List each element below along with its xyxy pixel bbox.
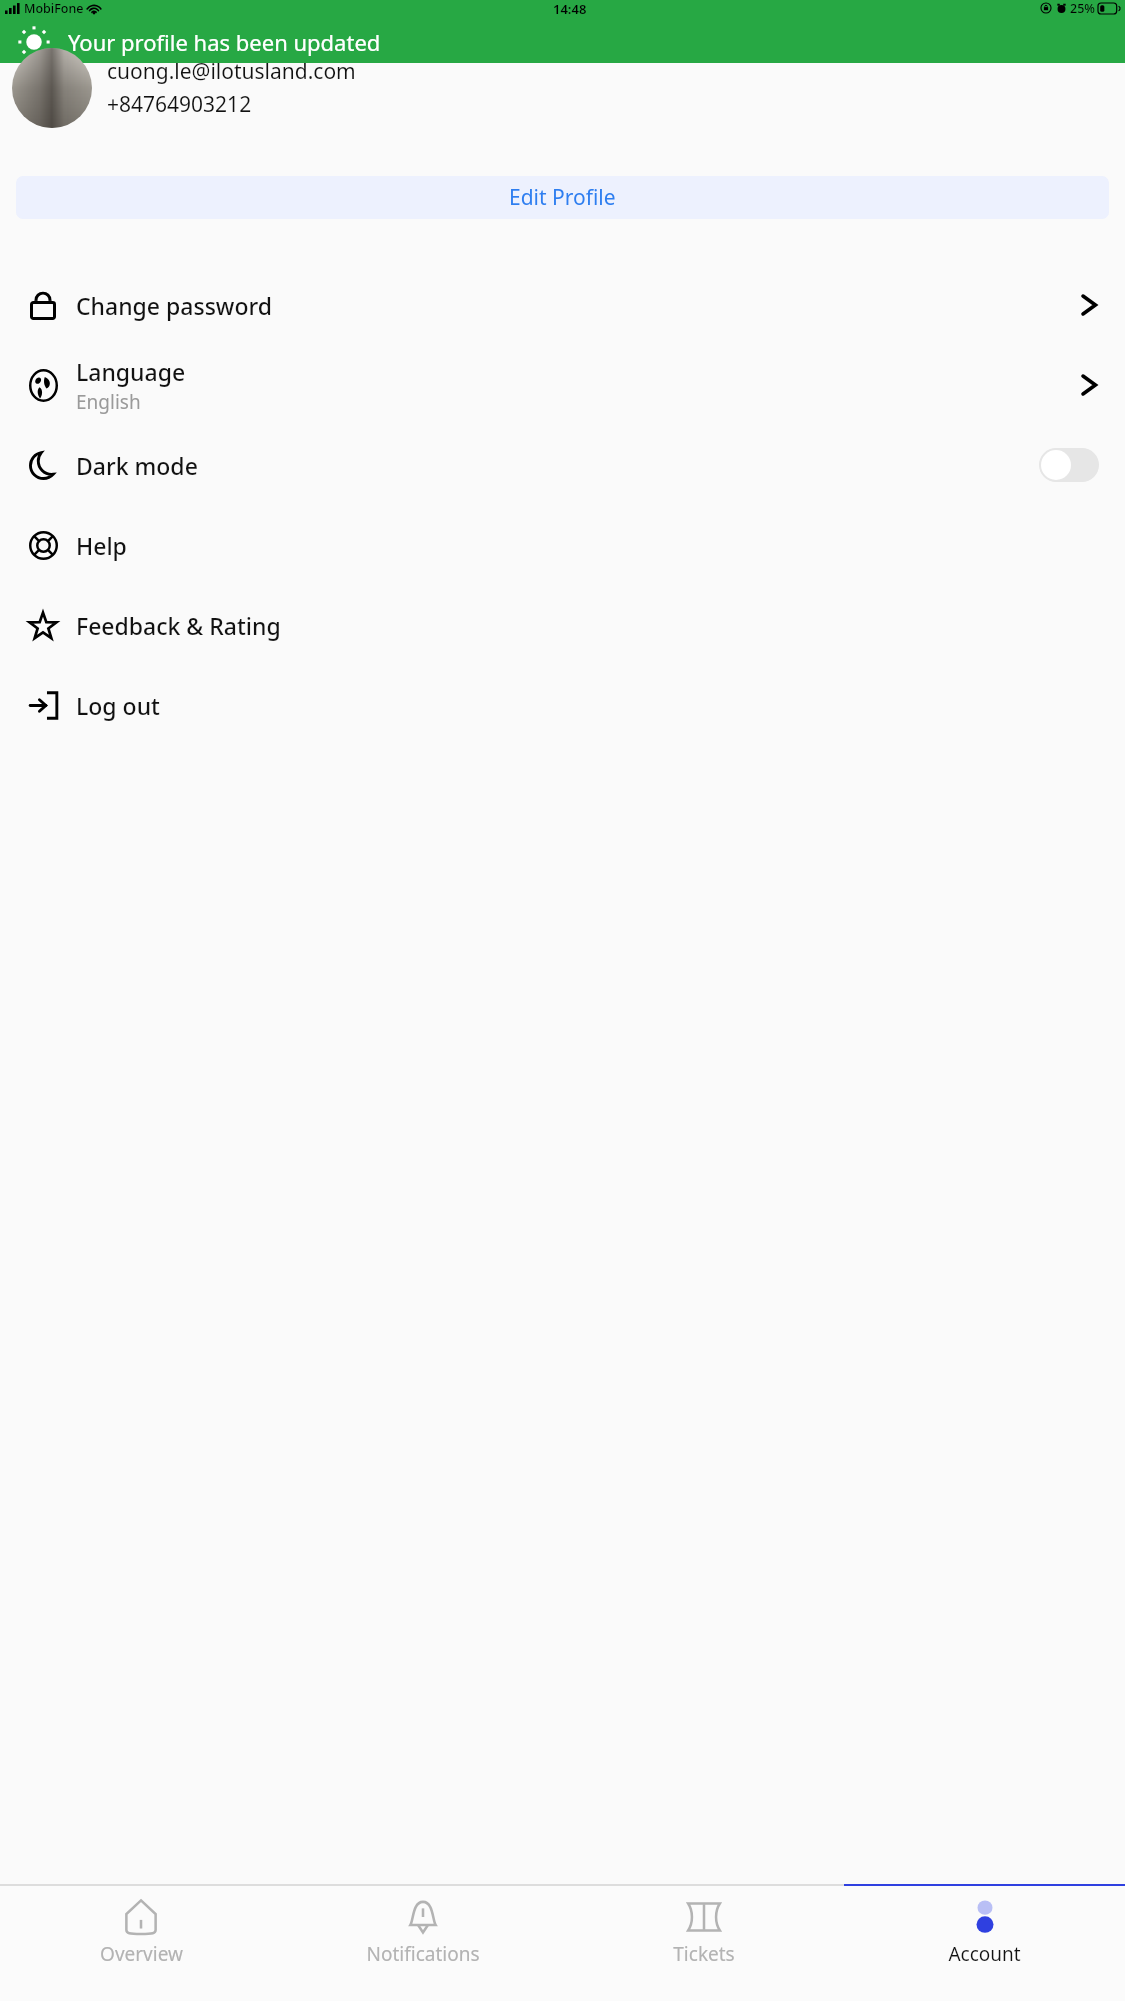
staticText: MobiFone <box>24 0 84 16</box>
button[interactable]: Notifications <box>282 1886 563 2001</box>
button[interactable]: Feedback & Rating <box>0 585 1125 665</box>
other: Open <box>1079 289 1099 321</box>
button[interactable]: Log out <box>0 665 1125 745</box>
staticText: Change password <box>76 290 272 321</box>
staticText: 25% <box>1070 0 1095 16</box>
other: Open <box>1079 369 1099 401</box>
staticText: Edit Profile <box>509 183 616 212</box>
staticText: Dark mode <box>76 450 198 481</box>
button[interactable]: Dark mode toggle <box>1039 448 1099 482</box>
staticText: Log out <box>76 690 160 721</box>
button[interactable]: Language <box>0 345 1125 425</box>
staticText: Help <box>76 530 127 561</box>
button[interactable]: Account <box>844 1886 1125 2001</box>
staticText: Tickets <box>673 1941 735 1967</box>
staticText: Your profile has been updated <box>68 27 381 57</box>
button[interactable]: Change password <box>0 265 1125 345</box>
staticText: cuong.le@ilotusland.com <box>107 57 356 86</box>
staticText: +84764903212 <box>107 90 252 119</box>
button[interactable]: Help <box>0 505 1125 585</box>
staticText: English <box>76 389 141 415</box>
button[interactable]: Dark mode <box>0 425 1125 505</box>
button[interactable]: Edit Profile <box>16 176 1109 219</box>
staticText: 14:48 <box>553 0 587 16</box>
staticText: Account <box>948 1941 1021 1967</box>
staticText: Overview <box>100 1941 183 1967</box>
staticText: Notifications <box>366 1941 480 1967</box>
button[interactable]: Overview <box>0 1886 282 2001</box>
staticText: Language <box>76 356 186 387</box>
staticText: Feedback & Rating <box>76 610 281 641</box>
button[interactable]: Tickets <box>563 1886 844 2001</box>
